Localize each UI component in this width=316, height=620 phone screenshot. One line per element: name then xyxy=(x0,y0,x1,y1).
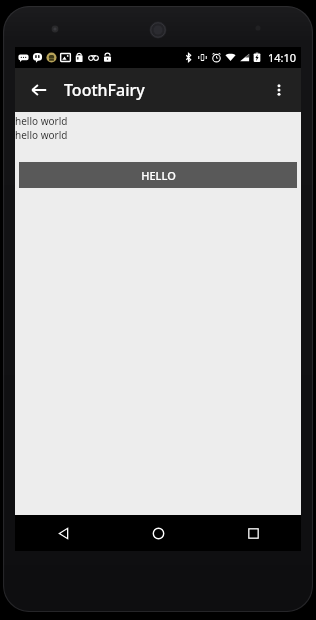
staticText: hello world xyxy=(15,114,68,128)
button[interactable]: Home xyxy=(111,515,206,551)
button[interactable]: HELLO xyxy=(19,162,297,188)
button[interactable]: Navigate up xyxy=(21,72,57,108)
staticText: hello world xyxy=(15,128,68,142)
staticText: 14:10 xyxy=(268,50,297,65)
staticText: ToothFairy xyxy=(64,79,262,101)
staticText: HELLO xyxy=(141,168,176,183)
button[interactable]: Back xyxy=(15,515,111,551)
button[interactable]: More options xyxy=(262,73,296,107)
button[interactable]: Recent apps xyxy=(206,515,301,551)
